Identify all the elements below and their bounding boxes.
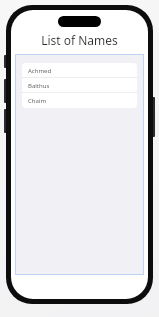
button[interactable]: Balthus xyxy=(22,78,137,93)
staticText: Chaim xyxy=(28,97,47,105)
staticText: List of Names xyxy=(41,32,118,48)
button[interactable]: Chaim xyxy=(22,93,137,108)
staticText: Achmed xyxy=(28,67,52,75)
staticText: Balthus xyxy=(28,82,50,90)
button[interactable]: Achmed xyxy=(22,63,137,78)
